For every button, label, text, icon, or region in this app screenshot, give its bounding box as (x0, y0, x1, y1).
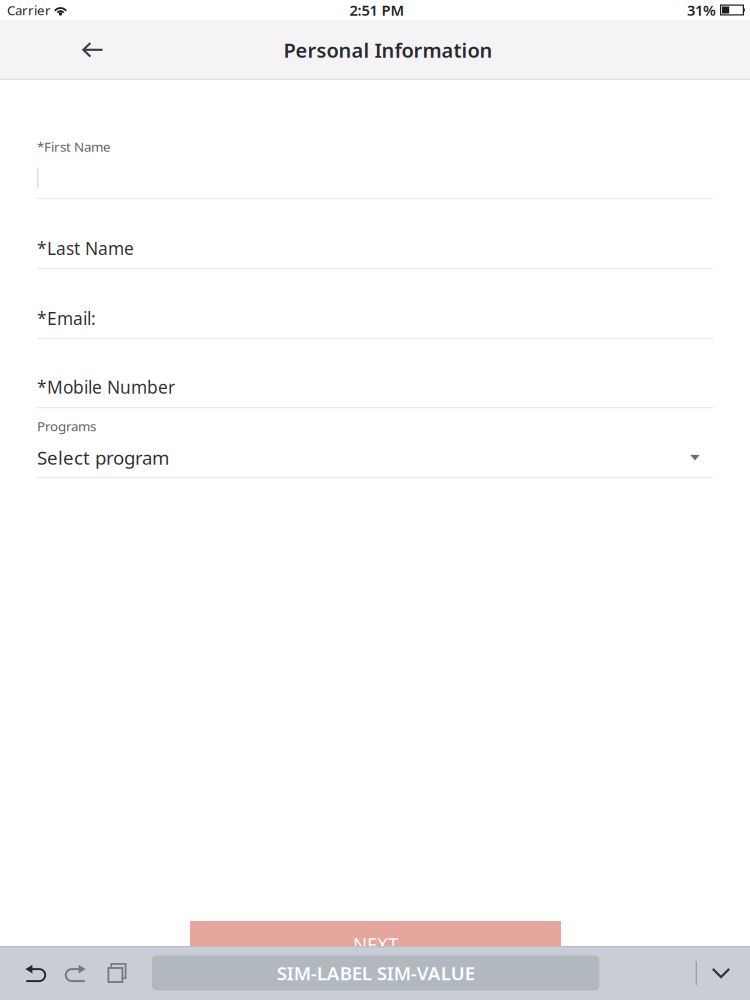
staticText: 2:51 PM (349, 0, 404, 20)
staticText: NEXT (353, 932, 398, 956)
button[interactable]: Undo (15, 951, 55, 995)
button[interactable]: Select program (37, 446, 713, 469)
button[interactable]: NEXT (190, 921, 561, 967)
staticText: Carrier (7, 1, 51, 19)
button[interactable]: Back (62, 24, 124, 76)
staticText: SIM-LABEL SIM-VALUE (277, 961, 475, 985)
staticText: *Last Name (37, 237, 134, 260)
staticText: *First Name (37, 138, 111, 155)
staticText: 31% (687, 0, 716, 20)
staticText: Programs (37, 417, 96, 435)
button[interactable]: Redo (56, 951, 96, 995)
staticText: *Email: (37, 307, 96, 330)
button[interactable]: Hide keyboard (706, 951, 736, 995)
staticText: *Mobile Number (37, 375, 175, 398)
button[interactable]: Copy (97, 951, 137, 995)
staticText: Personal Information (283, 37, 492, 63)
staticText: Select program (37, 445, 169, 470)
